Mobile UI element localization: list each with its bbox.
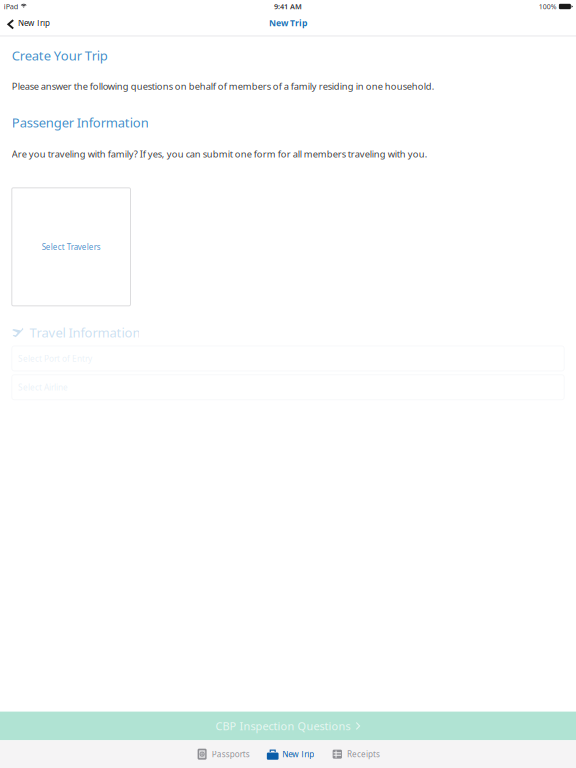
staticText: Travel Information: [29, 323, 140, 341]
staticText: 9:41 AM: [274, 1, 302, 11]
button[interactable]: New Trip: [0, 14, 58, 35]
button[interactable]: Receipts: [328, 742, 383, 767]
button[interactable]: New Trip: [264, 742, 317, 767]
staticText: Select Port of Entry: [18, 353, 92, 364]
button[interactable]: Passports: [193, 742, 253, 767]
staticText: CBP Inspection Questions: [215, 718, 350, 733]
staticText: 100%: [539, 2, 557, 11]
staticText: New Trip: [282, 749, 314, 760]
staticText: iPad: [4, 1, 19, 11]
button[interactable]: Select Travelers: [12, 188, 130, 306]
staticText: Receipts: [347, 749, 380, 760]
staticText: Please answer the following questions on…: [12, 80, 435, 92]
staticText: Are you traveling with family? If yes, y…: [12, 147, 428, 160]
staticText: Passenger Information: [12, 113, 149, 131]
staticText: Create Your Trip: [12, 46, 108, 64]
staticText: Passports: [212, 749, 250, 760]
staticText: Select Travelers: [42, 241, 101, 252]
staticText: New Trip: [18, 18, 50, 28]
button[interactable]: CBP Inspection Questions: [0, 712, 576, 740]
staticText: Select Airline: [18, 382, 68, 393]
button[interactable]: New Trip: [259, 14, 317, 34]
staticText: New Trip: [269, 17, 307, 29]
